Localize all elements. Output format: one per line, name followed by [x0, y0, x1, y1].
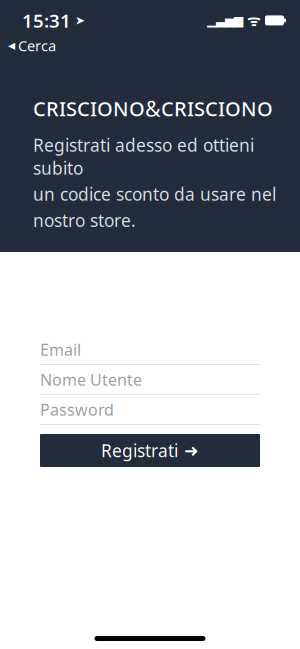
staticText: &	[145, 94, 161, 123]
staticText: Registrati	[101, 439, 178, 462]
staticText: ➜	[184, 441, 199, 460]
staticText: CRISCIONO	[161, 95, 273, 122]
button[interactable]: ◀	[0, 33, 62, 59]
staticText: Cerca	[18, 36, 56, 55]
staticText: ➤	[71, 14, 85, 27]
staticText: ᯤ	[243, 11, 260, 30]
button[interactable]: Password	[40, 395, 260, 425]
staticText: CRISCIONO	[33, 95, 145, 122]
button[interactable]: Nome Utente	[40, 365, 260, 395]
staticText: nostro store.	[33, 209, 136, 232]
staticText: ◀	[8, 40, 15, 51]
staticText: Registrati adesso ed ottieni subito	[33, 134, 254, 180]
staticText: Nome Utente	[40, 369, 142, 390]
staticText: ▁▃▅▆	[207, 14, 243, 27]
staticText: 15:31	[22, 8, 71, 33]
button[interactable]: Email	[40, 335, 260, 365]
staticText: Password	[40, 399, 114, 420]
staticText: Email	[40, 339, 81, 360]
staticText: un codice sconto da usare nel	[33, 183, 276, 206]
button[interactable]: Registrati	[40, 434, 260, 467]
